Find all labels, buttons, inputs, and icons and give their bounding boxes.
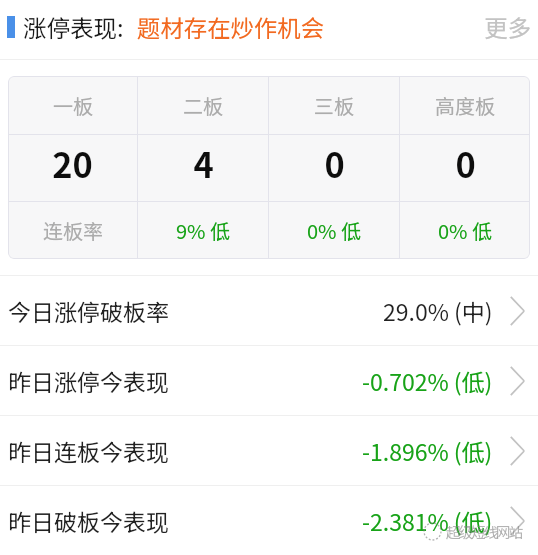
- staticText: 20: [52, 138, 93, 188]
- button[interactable]: 更多: [484, 10, 531, 44]
- staticText: 昨日涨停今表现: [8, 364, 169, 397]
- staticText: 超级短线网站: [446, 521, 521, 542]
- staticText: 一板: [53, 91, 93, 120]
- staticText: 二板: [183, 91, 223, 120]
- other: Details: [510, 296, 525, 326]
- staticText: 三板: [314, 91, 354, 120]
- button[interactable]: 今日涨停破板率: [0, 276, 538, 345]
- staticText: 0: [455, 138, 476, 188]
- staticText: 0% 低: [307, 216, 361, 245]
- button[interactable]: 昨日涨停今表现: [0, 346, 538, 415]
- staticText: 连板率: [43, 216, 103, 245]
- staticText: 今日涨停破板率: [8, 294, 169, 327]
- staticText: 题材存在炒作机会: [137, 10, 325, 44]
- staticText: -2.381% (低): [362, 504, 493, 537]
- staticText: -1.896% (低): [362, 434, 493, 467]
- staticText: 0: [324, 138, 345, 188]
- staticText: 0% 低: [438, 216, 492, 245]
- other: Details: [510, 436, 525, 466]
- staticText: 高度板: [435, 91, 495, 120]
- staticText: 昨日破板今表现: [8, 504, 169, 537]
- other: Details: [510, 506, 525, 536]
- other: Details: [510, 366, 525, 396]
- staticText: 29.0% (中): [383, 294, 493, 327]
- button[interactable]: 昨日连板今表现: [0, 416, 538, 485]
- button[interactable]: 昨日破板今表现: [0, 486, 538, 555]
- staticText: 更多: [484, 10, 531, 44]
- staticText: -0.702% (低): [362, 364, 493, 397]
- staticText: 9% 低: [176, 216, 230, 245]
- staticText: 涨停表现:: [23, 10, 124, 44]
- staticText: 4: [193, 138, 214, 188]
- staticText: 昨日连板今表现: [8, 434, 169, 467]
